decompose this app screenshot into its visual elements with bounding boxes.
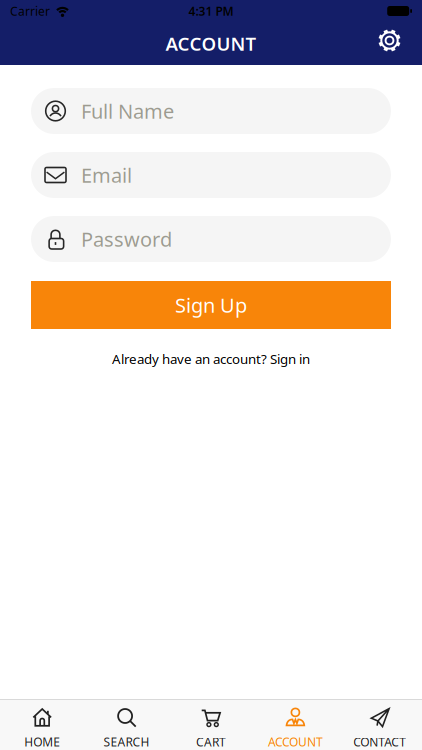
staticText: Password <box>81 226 172 252</box>
button[interactable]: CART <box>169 700 253 750</box>
button[interactable]: CONTACT <box>338 700 422 750</box>
staticText: ACCOUNT <box>268 734 323 750</box>
staticText: Already have an account? Sign in <box>112 350 310 368</box>
button[interactable]: Settings <box>377 28 422 59</box>
button[interactable]: Already have an account? Sign in <box>112 350 310 368</box>
secureTextField[interactable]: Password <box>81 226 229 252</box>
staticText: CONTACT <box>353 734 406 750</box>
button[interactable]: SEARCH <box>84 700 169 750</box>
textField[interactable]: Email <box>81 162 229 188</box>
staticText: ACCOUNT <box>165 31 256 56</box>
staticText: Email <box>81 162 132 188</box>
button[interactable]: Sign Up <box>31 281 391 329</box>
staticText: Carrier <box>10 3 50 19</box>
textField[interactable]: Full Name <box>81 98 229 124</box>
staticText: Full Name <box>81 98 174 124</box>
staticText: 4:31 PM <box>188 3 233 19</box>
button[interactable]: ACCOUNT <box>253 700 338 750</box>
staticText: CART <box>196 734 226 750</box>
staticText: SEARCH <box>104 734 150 750</box>
staticText: HOME <box>24 734 60 750</box>
staticText: Sign Up <box>175 292 247 318</box>
button[interactable]: HOME <box>0 700 84 750</box>
